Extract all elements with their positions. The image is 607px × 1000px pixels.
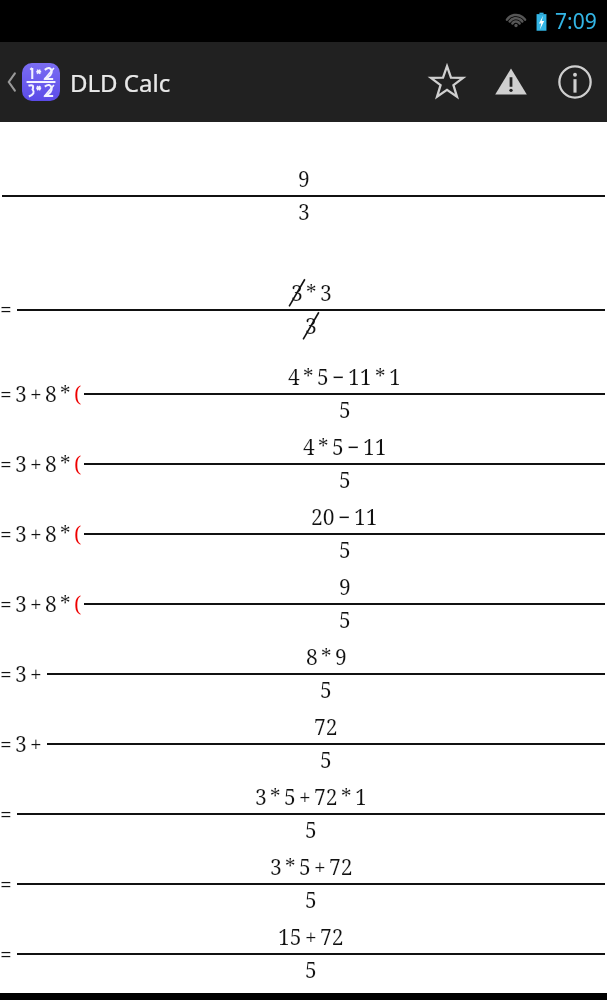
staticText: = bbox=[0, 870, 12, 899]
staticText: * bbox=[306, 279, 317, 308]
staticText: 7:09 bbox=[555, 7, 597, 36]
staticText: * bbox=[303, 363, 314, 392]
staticText: 8 bbox=[306, 643, 318, 672]
staticText: 8 bbox=[45, 590, 57, 619]
staticText: 3 bbox=[15, 730, 27, 759]
staticText: 3 bbox=[298, 198, 310, 227]
staticText: + bbox=[30, 380, 42, 409]
staticText: + bbox=[30, 520, 42, 549]
staticText: ( bbox=[74, 450, 82, 479]
staticText: 5 bbox=[305, 816, 317, 845]
staticText: 72 bbox=[329, 853, 353, 882]
staticText: ( bbox=[74, 520, 82, 549]
staticText: = bbox=[0, 520, 12, 549]
staticText: 11 bbox=[354, 503, 378, 532]
staticText: 5 bbox=[320, 746, 332, 775]
staticText: 5 bbox=[305, 956, 317, 985]
staticText: 9 bbox=[335, 643, 347, 672]
staticText: = bbox=[0, 590, 12, 619]
staticText: + bbox=[30, 660, 42, 689]
staticText: 5 bbox=[320, 676, 332, 705]
staticText: 5 bbox=[339, 396, 351, 425]
staticText: 5 bbox=[339, 606, 351, 635]
staticText: 72 bbox=[314, 713, 338, 742]
button[interactable]: Info bbox=[543, 42, 607, 122]
staticText: = bbox=[0, 730, 12, 759]
staticText: = bbox=[0, 295, 12, 324]
staticText: = bbox=[0, 380, 12, 409]
staticText: + bbox=[30, 590, 42, 619]
staticText: 15 bbox=[278, 923, 302, 952]
button[interactable]: Warnings bbox=[479, 42, 543, 122]
staticText: 5 bbox=[339, 536, 351, 565]
staticText: 1 bbox=[355, 783, 367, 812]
staticText: + bbox=[299, 783, 311, 812]
staticText: * bbox=[375, 363, 386, 392]
staticText: 5 bbox=[299, 853, 311, 882]
staticText: * bbox=[60, 520, 71, 549]
staticText: 3 bbox=[15, 590, 27, 619]
staticText: ( bbox=[74, 590, 82, 619]
staticText: ( bbox=[74, 380, 82, 409]
staticText: 3 bbox=[15, 520, 27, 549]
staticText: * bbox=[341, 783, 352, 812]
staticText: 4 bbox=[303, 433, 315, 462]
staticText: 8 bbox=[45, 520, 57, 549]
staticText: * bbox=[285, 853, 296, 882]
staticText: − bbox=[332, 363, 345, 392]
staticText: * bbox=[60, 380, 71, 409]
staticText: 5 bbox=[305, 886, 317, 915]
staticText: 3 bbox=[320, 279, 332, 308]
staticText: 8 bbox=[45, 380, 57, 409]
staticText: − bbox=[338, 503, 351, 532]
staticText: * bbox=[60, 590, 71, 619]
staticText: * bbox=[270, 783, 281, 812]
staticText: 5 bbox=[332, 433, 344, 462]
staticText: * bbox=[318, 433, 329, 462]
staticText: 5 bbox=[284, 783, 296, 812]
staticText: 9 bbox=[339, 573, 351, 602]
staticText: 20 bbox=[311, 503, 335, 532]
staticText: 3 bbox=[15, 450, 27, 479]
staticText: − bbox=[347, 433, 360, 462]
staticText: + bbox=[305, 923, 317, 952]
staticText: 3 bbox=[305, 312, 317, 341]
staticText: = bbox=[0, 450, 12, 479]
staticText: 3 bbox=[15, 380, 27, 409]
staticText: 4 bbox=[288, 363, 300, 392]
staticText: 1 bbox=[389, 363, 401, 392]
staticText: = bbox=[0, 940, 12, 969]
staticText: + bbox=[314, 853, 326, 882]
staticText: DLD Calc bbox=[70, 66, 171, 99]
staticText: 3 bbox=[291, 279, 303, 308]
other: Navigate up bbox=[4, 69, 20, 95]
staticText: 72 bbox=[320, 923, 344, 952]
staticText: 5 bbox=[339, 466, 351, 495]
staticText: 5 bbox=[317, 363, 329, 392]
staticText: 11 bbox=[348, 363, 372, 392]
button[interactable]: Favourite bbox=[415, 42, 479, 122]
staticText: 3 bbox=[15, 660, 27, 689]
staticText: = bbox=[0, 660, 12, 689]
staticText: 11 bbox=[363, 433, 387, 462]
staticText: = bbox=[0, 800, 12, 829]
staticText: 3 bbox=[270, 853, 282, 882]
staticText: + bbox=[30, 730, 42, 759]
staticText: + bbox=[30, 450, 42, 479]
staticText: * bbox=[321, 643, 332, 672]
staticText: 9 bbox=[298, 165, 310, 194]
staticText: * bbox=[60, 450, 71, 479]
button[interactable]: Navigate up bbox=[0, 63, 179, 101]
staticText: 72 bbox=[314, 783, 338, 812]
staticText: 8 bbox=[45, 450, 57, 479]
staticText: 3 bbox=[255, 783, 267, 812]
